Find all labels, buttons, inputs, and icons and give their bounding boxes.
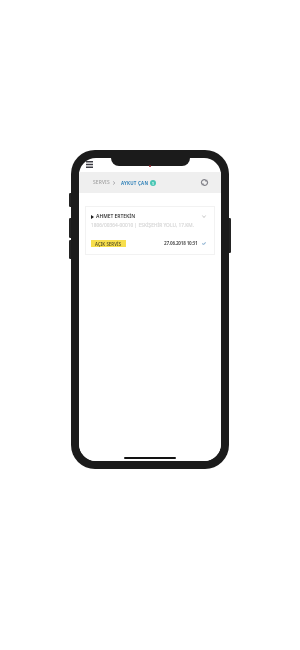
staticText: 1 — [152, 181, 154, 186]
button[interactable]: AYKUT ÇAN — [121, 180, 149, 186]
staticText: AÇIK SERVİS — [95, 241, 122, 247]
staticText: AHMET ERTEKİN — [96, 213, 136, 220]
button[interactable]: Menu — [86, 161, 93, 168]
button[interactable]: AÇIK SERVİS — [91, 240, 126, 247]
button[interactable]: AHMET ERTEKİN — [85, 206, 215, 255]
button[interactable]: SERVIS — [93, 179, 110, 186]
button[interactable]: Refresh — [200, 178, 209, 187]
staticText: 27.06.2018 10:31 — [164, 240, 198, 246]
staticText: 1806/00364-00010 | ESKİŞEHİR YOLU, 17.KM… — [91, 222, 195, 229]
